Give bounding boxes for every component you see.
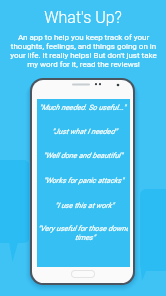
staticText: "Very useful for those downer times" <box>38 224 128 242</box>
staticText: "Works for panic attacks" <box>43 176 124 185</box>
staticText: "Just what I needed" <box>52 127 117 136</box>
staticText: What's Up? <box>44 8 122 27</box>
staticText: "Well done and beautiful" <box>43 151 123 160</box>
staticText: "Much needed. So useful..." <box>39 103 126 112</box>
staticText: An app to help you keep track of your th… <box>10 33 157 69</box>
staticText: "I use this at work" <box>55 201 114 210</box>
